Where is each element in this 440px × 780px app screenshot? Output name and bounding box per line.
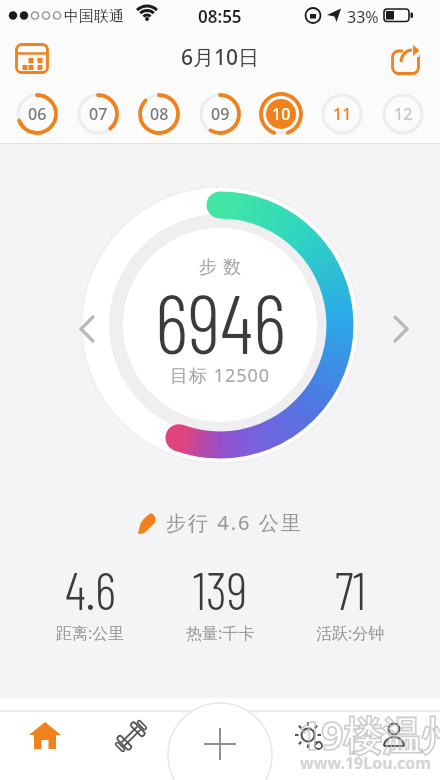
button[interactable] — [372, 714, 416, 758]
staticText: 步数 — [196, 256, 244, 279]
button[interactable]: 12 — [382, 93, 424, 135]
button[interactable] — [384, 38, 428, 82]
staticText: 距离:公里 — [56, 622, 125, 644]
staticText: 6月10日 — [181, 43, 260, 72]
staticText: 19楼温州 — [299, 708, 440, 761]
staticText: 步行 4.6 公里 — [166, 509, 303, 536]
staticText: 139 — [193, 558, 248, 620]
staticText: 71 — [335, 558, 366, 620]
staticText: 33% — [347, 6, 379, 28]
button[interactable] — [23, 714, 67, 758]
staticText: 06 — [28, 103, 47, 125]
staticText: www.19Lou.com — [300, 752, 431, 774]
staticText: 10 — [272, 103, 291, 125]
button[interactable] — [287, 714, 331, 758]
staticText: 活跃:分钟 — [316, 622, 385, 644]
button[interactable] — [66, 304, 108, 346]
staticText: 4.6 — [65, 558, 116, 620]
button[interactable] — [109, 714, 153, 758]
button[interactable]: 08 — [138, 93, 180, 135]
button[interactable] — [10, 36, 54, 80]
staticText: 目标 12500 — [170, 363, 271, 388]
staticText: 08:55 — [198, 5, 242, 28]
button[interactable]: 09 — [199, 93, 241, 135]
button[interactable]: 07 — [77, 93, 119, 135]
staticText: 中国联通 — [64, 7, 124, 26]
staticText: 09 — [211, 103, 230, 125]
button[interactable]: 10 — [260, 93, 302, 135]
staticText: 6946 — [155, 272, 286, 370]
staticText: 12 — [394, 103, 413, 125]
staticText: 热量:千卡 — [186, 622, 255, 644]
button[interactable]: 11 — [321, 93, 363, 135]
staticText: 11 — [333, 103, 352, 125]
staticText: 08 — [150, 103, 169, 125]
staticText: 07 — [89, 103, 108, 125]
button[interactable]: 06 — [16, 93, 58, 135]
button[interactable] — [192, 716, 248, 772]
button[interactable] — [332, 304, 374, 346]
